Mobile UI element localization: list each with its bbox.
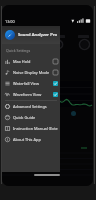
staticText: Noise Display Mode [13,70,50,75]
staticText: Sound Analyzer Pro [18,32,57,38]
button[interactable]: Waterfall View [2,78,60,89]
staticText: Waterfall View [13,81,39,86]
staticText: Quick Guide [13,115,36,120]
staticText: Quick Settings [6,48,31,53]
staticText: Waveform View [13,92,42,97]
staticText: Advanced Settings [13,104,47,109]
staticText: About This App [13,137,41,142]
staticText: 012 [4,131,25,147]
staticText: Max Hold [13,59,31,64]
button[interactable]: Max Hold [2,56,60,67]
button[interactable]: App icon [2,26,60,44]
button[interactable]: Instruction Manual (Exter [2,123,60,134]
staticText: 13:00 [5,19,15,24]
other: App icon [5,30,15,40]
button[interactable]: Waveform View [2,89,60,100]
staticText: dB [27,140,33,146]
button[interactable]: Advanced Settings [2,101,60,112]
button[interactable]: About This App [2,134,60,145]
button[interactable]: Quick Guide [2,112,60,123]
button[interactable]: Noise Display Mode [2,67,60,78]
staticText: Instruction Manual (Exter [13,126,58,131]
